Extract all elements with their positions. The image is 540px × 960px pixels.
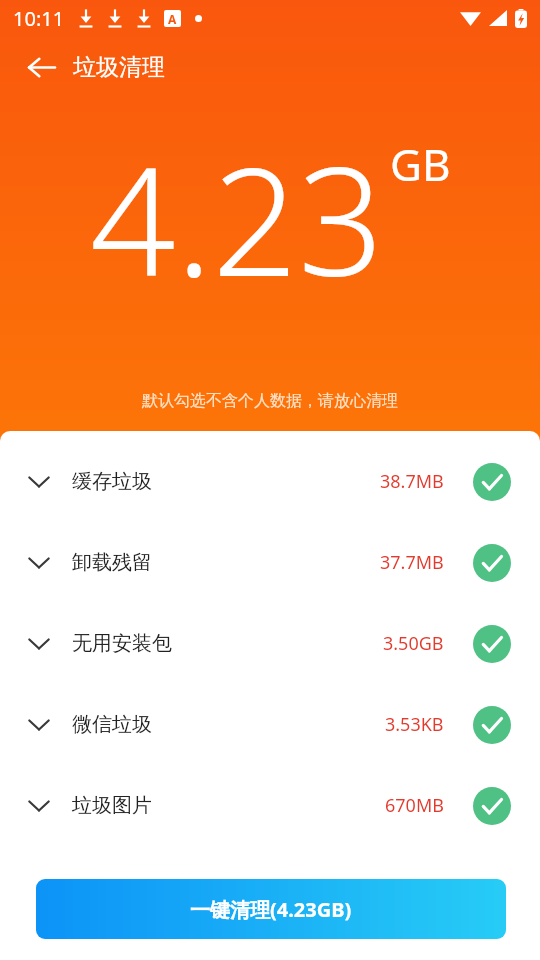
button[interactable]: 垃圾图片 bbox=[0, 765, 540, 846]
button[interactable]: 一键清理(4.23GB) bbox=[36, 879, 506, 939]
staticText: 微信垃圾 bbox=[72, 712, 152, 737]
button[interactable]: Toggle selection bbox=[473, 625, 511, 663]
button[interactable]: Toggle selection bbox=[473, 544, 511, 582]
staticText: 670MB bbox=[385, 793, 444, 818]
button[interactable]: 无用安装包 bbox=[0, 603, 540, 684]
button[interactable]: Toggle selection bbox=[473, 463, 511, 501]
staticText: 垃圾图片 bbox=[72, 793, 152, 818]
staticText: 4.23 bbox=[90, 116, 384, 320]
button[interactable]: Toggle selection bbox=[473, 787, 511, 825]
staticText: 缓存垃圾 bbox=[72, 469, 152, 494]
staticText: 3.53KB bbox=[385, 712, 444, 737]
button[interactable]: Toggle selection bbox=[473, 706, 511, 744]
button[interactable]: 卸载残留 bbox=[0, 522, 540, 603]
staticText: 卸载残留 bbox=[72, 550, 152, 575]
staticText: 37.7MB bbox=[380, 550, 444, 575]
staticText: 3.50GB bbox=[383, 631, 444, 656]
button[interactable]: 微信垃圾 bbox=[0, 684, 540, 765]
staticText: GB bbox=[390, 134, 451, 194]
staticText: A bbox=[168, 11, 177, 27]
staticText: 垃圾清理 bbox=[73, 53, 165, 82]
staticText: 默认勾选不含个人数据，请放心清理 bbox=[142, 391, 398, 411]
staticText: 一键清理(4.23GB) bbox=[190, 896, 352, 923]
staticText: 无用安装包 bbox=[72, 631, 172, 656]
staticText: 10:11 bbox=[13, 5, 65, 32]
button[interactable]: 缓存垃圾 bbox=[0, 441, 540, 522]
staticText: 38.7MB bbox=[380, 469, 444, 494]
button[interactable]: Back bbox=[22, 48, 60, 86]
